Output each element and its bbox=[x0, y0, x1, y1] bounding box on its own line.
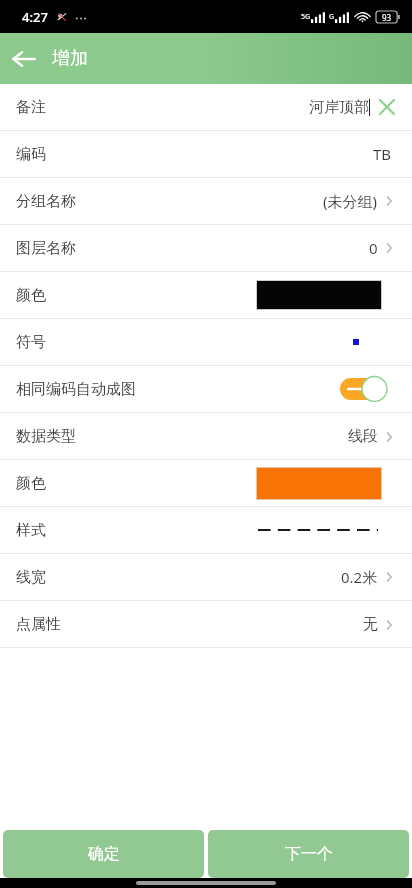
button[interactable]: 确定 bbox=[3, 830, 204, 878]
staticText: 图层名称 bbox=[16, 239, 76, 258]
button[interactable]: 线宽 bbox=[0, 554, 412, 600]
button[interactable]: 数据类型 bbox=[0, 413, 412, 459]
button[interactable]: 符号 bbox=[346, 332, 366, 352]
staticText: (未分组) bbox=[323, 191, 378, 211]
staticText: 符号 bbox=[16, 333, 46, 352]
staticText: 93 bbox=[382, 12, 392, 23]
staticText: 数据类型 bbox=[16, 427, 76, 446]
button[interactable]: 相同编码自动成图 开关 bbox=[340, 376, 388, 402]
staticText: 无 bbox=[363, 615, 378, 634]
staticText: 样式 bbox=[16, 521, 46, 540]
button[interactable]: 相同编码自动成图 bbox=[0, 366, 412, 412]
button[interactable]: Back bbox=[0, 35, 48, 83]
staticText: G bbox=[329, 12, 335, 22]
button[interactable]: 样式 bbox=[0, 507, 412, 553]
staticText: 点属性 bbox=[16, 615, 61, 634]
staticText: 线段 bbox=[348, 427, 378, 446]
button[interactable]: 颜色 bbox=[0, 272, 412, 318]
staticText: 0 bbox=[369, 238, 378, 258]
staticText: 颜色 bbox=[16, 286, 46, 305]
button[interactable]: 颜色 bbox=[0, 460, 412, 506]
staticText: 4:27 bbox=[22, 8, 48, 26]
staticText: TB bbox=[373, 144, 392, 164]
staticText: 确定 bbox=[88, 844, 120, 864]
staticText: 下一个 bbox=[285, 844, 333, 864]
button[interactable]: 下一个 bbox=[208, 830, 409, 878]
button[interactable]: 备注 bbox=[0, 84, 412, 130]
button[interactable]: 图层名称 bbox=[0, 225, 412, 271]
button[interactable]: 样式 bbox=[258, 518, 378, 542]
staticText: 备注 bbox=[16, 98, 46, 117]
staticText: 颜色 bbox=[16, 474, 46, 493]
staticText: 线宽 bbox=[16, 568, 46, 587]
button[interactable]: 编码 bbox=[0, 131, 412, 177]
staticText: 河岸顶部 bbox=[309, 98, 369, 117]
button[interactable]: 分组名称 bbox=[0, 178, 412, 224]
staticText: 增加 bbox=[52, 47, 88, 70]
staticText: 0.2米 bbox=[341, 567, 378, 587]
staticText: 分组名称 bbox=[16, 192, 76, 211]
button[interactable]: 清除 bbox=[376, 96, 398, 118]
button[interactable]: 符号 bbox=[0, 319, 412, 365]
staticText: 相同编码自动成图 bbox=[16, 380, 136, 399]
staticText: 编码 bbox=[16, 145, 46, 164]
button[interactable]: 点属性 bbox=[0, 601, 412, 647]
staticText: 5G bbox=[301, 12, 311, 22]
